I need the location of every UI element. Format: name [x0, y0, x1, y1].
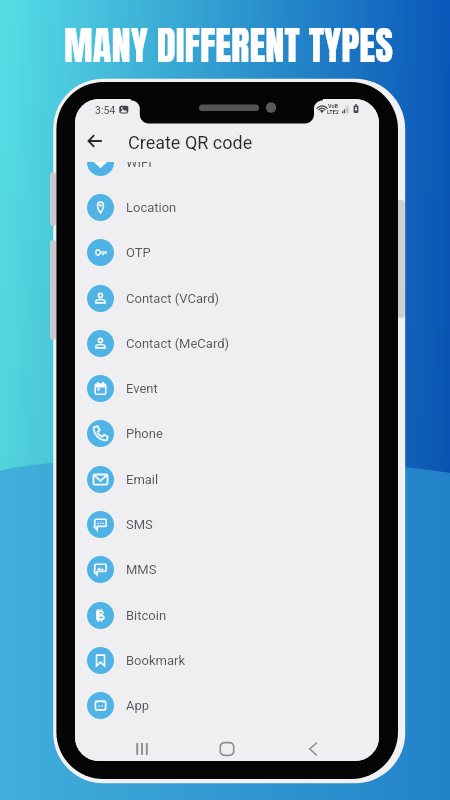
button[interactable]: Event	[75, 366, 379, 411]
staticText: App	[126, 698, 150, 713]
button[interactable]: Bookmark	[75, 638, 379, 683]
button[interactable]: Home	[206, 737, 248, 761]
button[interactable]: WIFI	[75, 140, 379, 185]
staticText: MMS	[126, 562, 157, 577]
staticText: Bitcoin	[126, 608, 167, 623]
staticText: Contact (MeCard)	[126, 336, 230, 351]
staticText: SMS	[126, 517, 153, 532]
staticText: LTE2	[327, 109, 340, 115]
staticText: Event	[126, 381, 158, 396]
button[interactable]: Recent apps	[121, 737, 163, 761]
button[interactable]: Bitcoin	[75, 593, 379, 638]
staticText: 3:54	[95, 104, 116, 116]
staticText: MANY DIFFERENT TYPES	[64, 17, 393, 75]
staticText: Contact (VCard)	[126, 291, 220, 306]
staticText: Bookmark	[126, 653, 185, 668]
staticText: Location	[126, 200, 177, 215]
staticText: Create QR code	[128, 132, 253, 153]
button[interactable]: Contact (MeCard)	[75, 321, 379, 366]
staticText: OTP	[126, 245, 151, 260]
button[interactable]: Email	[75, 457, 379, 502]
button[interactable]: Location	[75, 185, 379, 230]
button[interactable]: Contact (VCard)	[75, 276, 379, 321]
button[interactable]: MMS	[75, 547, 379, 592]
button[interactable]: Phone	[75, 411, 379, 456]
button[interactable]: App	[75, 683, 379, 728]
button[interactable]: Back	[292, 737, 334, 761]
staticText: WIFI	[126, 155, 152, 170]
button[interactable]: OTP	[75, 230, 379, 275]
button[interactable]: SMS	[75, 502, 379, 547]
button[interactable]: Back	[81, 127, 109, 155]
staticText: VoB	[328, 103, 339, 109]
staticText: Phone	[126, 426, 163, 441]
staticText: Email	[126, 472, 159, 487]
